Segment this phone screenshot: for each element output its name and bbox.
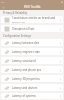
button[interactable]: Open — [58, 27, 62, 31]
button[interactable]: Open — [58, 94, 62, 98]
button[interactable]: Constitution articles on brand and — [1, 16, 63, 23]
staticText: Latency engineer stan — [12, 50, 40, 54]
button[interactable]: Open — [58, 18, 62, 22]
staticText: doctor / tut — [12, 20, 26, 23]
staticText: Latency of systems — [12, 94, 36, 98]
button[interactable]: Back — [0, 4, 6, 10]
staticText: Latency between devi — [12, 41, 40, 45]
button[interactable]: Open — [58, 59, 62, 63]
staticText: Wifi Toolkit — [24, 5, 41, 9]
button[interactable]: Latency and devices — [1, 84, 63, 91]
button[interactable]: Open — [58, 50, 62, 54]
staticText: Latency and phone pro — [12, 68, 42, 72]
button[interactable]: Open — [58, 86, 62, 90]
button[interactable]: Latency structured — [1, 57, 63, 64]
staticText: Configuration Settings — [3, 34, 31, 38]
staticText: Latency 3D properties — [12, 77, 40, 81]
button[interactable]: Disruption of lists — [1, 25, 63, 32]
staticText: Constitution articles on brand and — [12, 16, 56, 20]
staticText: Latency and devices — [12, 86, 38, 90]
button[interactable]: Open — [58, 41, 62, 45]
button[interactable]: Open — [58, 68, 62, 72]
staticText: Privacy & Reliability — [3, 11, 28, 15]
button[interactable]: Open — [58, 77, 62, 81]
staticText: ▮▮ — [61, 1, 63, 3]
button[interactable]: Latency and phone pro — [1, 66, 63, 73]
staticText: 9:41 — [1, 1, 5, 3]
button[interactable]: Latency engineer stan — [1, 48, 63, 55]
staticText: Latency structured — [12, 59, 36, 63]
staticText: Disruption of lists — [12, 27, 35, 31]
button[interactable]: Latency 3D properties — [1, 75, 63, 82]
button[interactable]: Latency of systems — [1, 93, 63, 99]
button[interactable]: Latency between devi — [1, 39, 63, 46]
